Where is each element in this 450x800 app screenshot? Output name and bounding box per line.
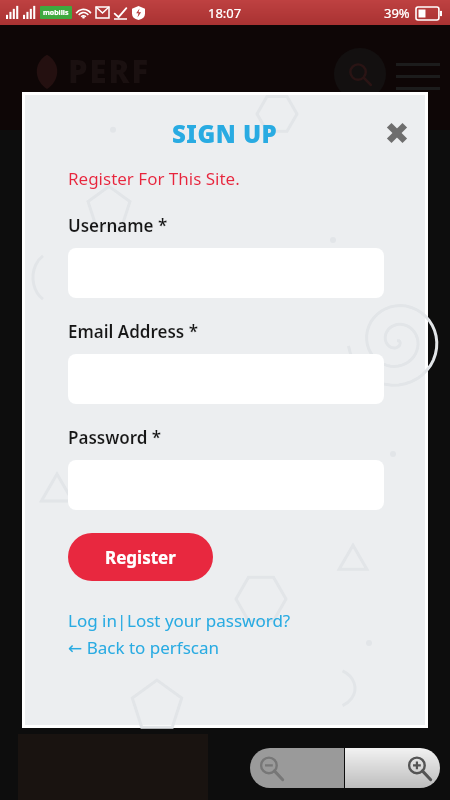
staticText: Register [105,546,176,569]
button[interactable]: Register [68,533,213,581]
button[interactable]: Menu [396,63,440,90]
staticText: 18:07 [208,4,242,22]
staticText: ← Back to perfscan [68,636,220,659]
button[interactable]: ← Back to perfscan [68,636,220,659]
button[interactable]: Search [334,48,386,100]
staticText: Username * [68,214,168,237]
staticText: 39% [384,4,410,22]
staticText: Email Address * [68,320,198,343]
button[interactable]: Zoom in [345,748,440,788]
button[interactable]: Zoom out [250,748,344,788]
staticText: Log in [68,609,117,632]
button[interactable]: Close [379,115,415,151]
staticText: Register For This Site. [68,167,240,190]
button[interactable]: Log in [68,609,117,632]
staticText: | [117,609,127,632]
staticText: PERF [68,50,151,92]
staticText: mobilis [43,8,69,18]
staticText: SIGN UP [172,117,278,150]
staticText: Lost your password? [127,609,291,632]
button[interactable]: Lost your password? [127,609,291,632]
staticText: Password * [68,426,162,449]
